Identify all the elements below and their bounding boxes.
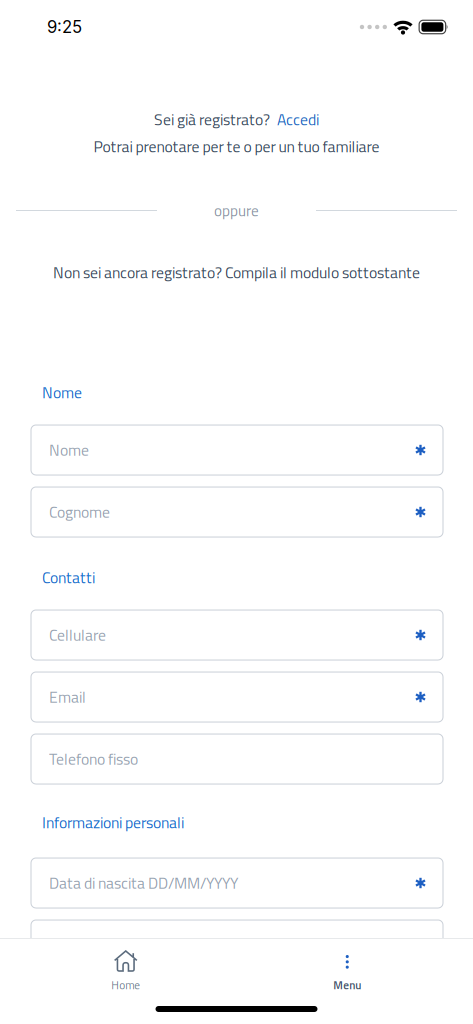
button[interactable]: Cellulare <box>0 610 473 660</box>
button[interactable]: Nome <box>0 425 473 475</box>
button[interactable]: Cognome <box>0 487 473 537</box>
staticText: Telefono fisso <box>49 747 138 771</box>
staticText: Nome <box>42 380 82 404</box>
staticText: Data di nascita DD/MM/YYYY <box>49 871 238 895</box>
staticText: Cellulare <box>49 623 106 647</box>
button[interactable]: Email <box>0 672 473 722</box>
staticText: Accedi <box>277 107 319 131</box>
staticText: oppure <box>214 199 259 222</box>
staticText: Contatti <box>42 565 95 589</box>
staticText: Potrai prenotare per te o per un tuo fam… <box>93 134 379 158</box>
button[interactable]: Campo <box>0 920 473 970</box>
button[interactable]: Telefono fisso <box>0 734 473 784</box>
staticText: Home <box>111 976 140 994</box>
staticText: Menu <box>333 976 361 994</box>
staticText: Sei già registrato? <box>154 107 270 131</box>
staticText: Cognome <box>49 500 110 524</box>
button[interactable]: Home <box>15 939 236 994</box>
staticText: Informazioni personali <box>42 810 184 834</box>
staticText: Email <box>49 685 86 709</box>
button[interactable]: Data di nascita DD/MM/YYYY <box>0 858 473 908</box>
button[interactable]: Menu <box>236 939 458 994</box>
button[interactable]: Accedi <box>277 107 319 131</box>
staticText: Non sei ancora registrato? Compila il mo… <box>53 260 420 284</box>
staticText: 9:25 <box>47 17 82 37</box>
staticText: Nome <box>49 438 89 462</box>
